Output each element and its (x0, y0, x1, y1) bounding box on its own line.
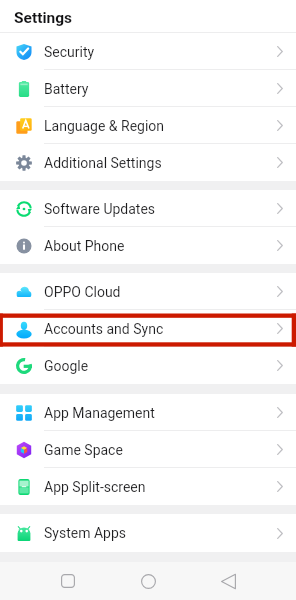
button[interactable]: Language & Region (0, 107, 296, 144)
button[interactable]: App Split-screen (0, 468, 296, 505)
staticText: Language & Region (44, 118, 165, 134)
button[interactable]: Google (0, 347, 296, 384)
staticText: Settings (14, 9, 73, 27)
button[interactable]: Security (0, 33, 296, 70)
button[interactable]: Game Space (0, 431, 296, 468)
staticText: Battery (44, 81, 89, 97)
staticText: About Phone (44, 238, 125, 254)
staticText: System Apps (44, 525, 126, 541)
button[interactable]: Additional Settings (0, 144, 296, 181)
staticText: Additional Settings (44, 155, 162, 171)
button[interactable]: System Apps (0, 514, 296, 552)
button[interactable]: Recent apps (53, 566, 83, 596)
button[interactable]: OPPO Cloud (0, 273, 296, 310)
button[interactable]: Software Updates (0, 190, 296, 227)
button[interactable]: Back (213, 566, 243, 596)
staticText: App Management (44, 405, 155, 421)
staticText: Software Updates (44, 201, 156, 217)
button[interactable]: About Phone (0, 227, 296, 264)
button[interactable]: Battery (0, 70, 296, 107)
staticText: Google (44, 358, 89, 374)
button[interactable]: Accounts and Sync (0, 310, 296, 347)
button[interactable]: Home (133, 566, 163, 596)
staticText: Accounts and Sync (44, 321, 164, 337)
staticText: Game Space (44, 442, 123, 458)
staticText: Security (44, 44, 95, 60)
button[interactable]: App Management (0, 394, 296, 431)
staticText: App Split-screen (44, 479, 146, 495)
staticText: OPPO Cloud (44, 284, 121, 300)
